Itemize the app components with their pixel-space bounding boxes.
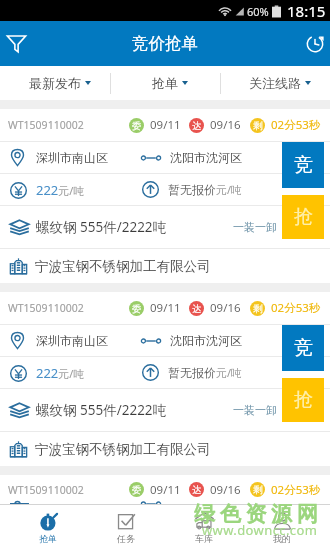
staticText: 剩 [253,484,263,496]
staticText: 深圳市南山区 [36,333,108,348]
staticText: 车库 [195,533,213,544]
staticText: WT1509110002 [8,118,84,132]
staticText: 09/11 [150,300,181,316]
staticText: 螺纹钢 555件/2222吨 [36,218,167,236]
staticText: 关注线路 [249,75,301,91]
staticText: 深圳市南山区 [36,150,108,165]
staticText: 螺纹钢 555件/2222吨 [36,401,167,419]
staticText: 剩 [253,120,263,132]
staticText: 222元/吨 [36,181,85,199]
staticText: 抢 [294,205,313,229]
button[interactable]: 抢单 [9,505,87,550]
staticText: 委 [132,484,142,496]
staticText: 沈阳市沈河区 [170,150,242,165]
staticText: 竞 [294,336,313,360]
button[interactable]: 筛选 [0,21,33,66]
staticText: 18:15 [287,1,326,21]
staticText: 达 [192,303,202,315]
staticText: 抢单 [152,75,178,91]
button[interactable]: 历史记录 [300,21,330,66]
staticText: 委 [132,120,142,132]
button[interactable]: 我的 [243,505,321,550]
button[interactable]: 抢 [282,195,324,239]
staticText: 02分53秒 [271,482,321,498]
staticText: 60% [247,4,269,19]
staticText: 宁波宝钢不锈钢加工有限公司 [35,258,211,275]
staticText: 09/11 [150,117,181,133]
button[interactable]: 车库 [165,505,243,550]
staticText: 任务 [117,533,135,544]
button[interactable]: 竞 [282,142,324,188]
staticText: 宁波宝钢不锈钢加工有限公司 [35,441,211,458]
staticText: 抢 [294,388,313,412]
staticText: 02分53秒 [271,300,321,316]
staticText: 09/16 [210,482,241,498]
staticText: www.downcc.com [202,521,318,539]
button[interactable]: 最新发布 [0,66,110,100]
staticText: 竞价抢单 [132,33,198,54]
button[interactable]: 竞 [282,325,324,371]
staticText: 达 [192,484,202,496]
staticText: 绿色资源网 [192,501,320,527]
staticText: 222元/吨 [36,364,85,382]
staticText: 剩 [253,303,263,315]
button[interactable]: 关注线路 [221,66,330,100]
staticText: 09/16 [210,300,241,316]
staticText: 达 [192,120,202,132]
staticText: 一装一卸 [233,220,277,234]
staticText: 竞 [294,153,313,177]
staticText: 我的 [273,533,291,544]
button[interactable]: 抢单 [111,66,220,100]
staticText: 09/11 [150,482,181,498]
staticText: 一装一卸 [233,403,277,417]
staticText: WT1509110002 [8,301,84,315]
staticText: 沈阳市沈河区 [170,333,242,348]
staticText: WT1509110002 [8,483,84,497]
button[interactable]: 任务 [87,505,165,550]
staticText: 09/16 [210,117,241,133]
staticText: 抢单 [39,533,57,544]
staticText: 暂无报价元/吨 [168,182,243,197]
staticText: 02分53秒 [271,117,321,133]
staticText: 暂无报价元/吨 [168,365,243,380]
staticText: 最新发布 [29,75,81,91]
button[interactable]: 抢 [282,378,324,422]
staticText: 委 [132,303,142,315]
